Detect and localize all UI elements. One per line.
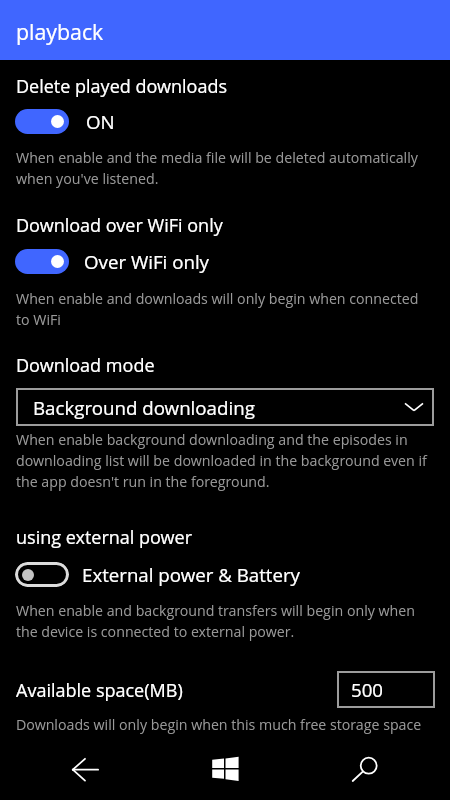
staticText: 500 — [351, 677, 384, 702]
staticText: When enable and downloads will only begi… — [16, 289, 426, 329]
staticText: External power & Battery — [82, 562, 300, 587]
staticText: When enable and background transfers wil… — [16, 601, 426, 641]
staticText: When enable background downloading and t… — [16, 430, 436, 491]
staticText: Over WiFi only — [84, 249, 210, 274]
button[interactable]: 500 — [337, 671, 435, 708]
button[interactable]: External power & Battery — [15, 562, 287, 587]
button[interactable]: ON — [15, 109, 98, 134]
button[interactable]: Home — [190, 740, 260, 800]
button[interactable]: Background downloading — [16, 388, 434, 426]
staticText: Delete played downloads — [16, 74, 228, 99]
staticText: using external power — [16, 525, 193, 550]
staticText: Background downloading — [33, 395, 255, 420]
button[interactable]: Search — [340, 740, 410, 800]
button[interactable]: Back — [38, 740, 108, 800]
staticText: Available space(MB) — [16, 678, 183, 703]
staticText: When enable and the media file will be d… — [16, 148, 426, 188]
staticText: Downloads will only begin when this much… — [16, 715, 436, 734]
staticText: Download over WiFi only — [16, 213, 223, 238]
staticText: Download mode — [16, 353, 155, 378]
button[interactable]: Over WiFi only — [15, 249, 195, 274]
staticText: ON — [86, 109, 115, 134]
staticText: playback — [16, 17, 104, 46]
